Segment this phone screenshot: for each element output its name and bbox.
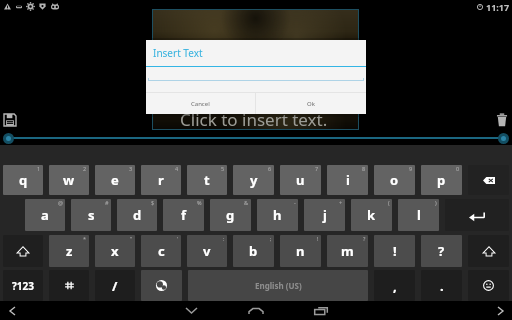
button[interactable]: e [95, 165, 135, 195]
staticText: r [158, 171, 164, 189]
button[interactable]: a [25, 199, 65, 231]
staticText: u [296, 171, 305, 189]
button[interactable]: h [257, 199, 298, 231]
button[interactable]: English (US) [188, 270, 368, 301]
staticText: ' [177, 235, 179, 242]
staticText: % [197, 199, 202, 206]
staticText: ! [317, 235, 319, 242]
staticText: Insert Text [153, 46, 203, 60]
staticText: ; [270, 235, 272, 242]
staticText: t [204, 171, 210, 189]
staticText: ? [438, 242, 445, 260]
button[interactable]: Change language [49, 270, 89, 301]
button[interactable]: Save [3, 113, 17, 127]
staticText: j [323, 206, 327, 224]
staticText: a [41, 206, 49, 224]
staticText: * [83, 235, 87, 242]
staticText: ?123 [12, 279, 34, 293]
staticText: ) [435, 199, 437, 206]
staticText: . [440, 277, 444, 295]
button[interactable]: Delete [495, 113, 509, 127]
staticText: , [393, 277, 397, 295]
staticText: y [250, 171, 258, 189]
button[interactable]: q [3, 165, 43, 195]
button[interactable]: r [141, 165, 181, 195]
button[interactable]: Back [0, 301, 24, 320]
staticText: ? [363, 235, 366, 242]
staticText: l [417, 206, 421, 224]
button[interactable]: g [210, 199, 251, 231]
staticText: b [249, 242, 258, 260]
button[interactable]: Shift [468, 235, 509, 267]
staticText: 9 [409, 165, 413, 172]
button[interactable]: / [95, 270, 135, 301]
button[interactable]: ? [421, 235, 462, 267]
button[interactable]: Emoji [468, 270, 509, 301]
button[interactable]: b [233, 235, 274, 267]
staticText: d [133, 206, 142, 224]
button[interactable]: . [421, 270, 462, 301]
button[interactable]: Click to insert text. [153, 10, 358, 129]
button[interactable]: , [374, 270, 415, 301]
button[interactable]: w [49, 165, 89, 195]
staticText: v [203, 242, 211, 260]
button[interactable]: Enter [445, 199, 509, 231]
staticText: 11:17 [486, 1, 510, 13]
staticText: o [390, 171, 399, 189]
staticText: & [244, 199, 249, 206]
staticText: Click to insert text. [180, 108, 328, 131]
button[interactable]: v [187, 235, 227, 267]
button[interactable]: c [141, 235, 181, 267]
button[interactable]: s [71, 199, 111, 231]
button[interactable]: j [304, 199, 345, 231]
staticText: e [111, 171, 119, 189]
button[interactable]: Language [141, 270, 182, 301]
button[interactable]: k [351, 199, 392, 231]
staticText: 5 [221, 165, 225, 172]
staticText: / [112, 277, 118, 295]
button[interactable]: Backspace [468, 165, 509, 195]
button[interactable]: i [327, 165, 368, 195]
staticText: " [130, 235, 133, 242]
button[interactable]: u [280, 165, 321, 195]
button[interactable]: f [163, 199, 204, 231]
staticText: 3 [129, 165, 133, 172]
staticText: q [19, 171, 28, 189]
button[interactable] [0, 131, 512, 145]
staticText: 8 [362, 165, 366, 172]
button[interactable]: Recents [307, 301, 335, 320]
button[interactable]: Forward [488, 301, 512, 320]
staticText: k [367, 206, 376, 224]
staticText: English (US) [255, 280, 302, 291]
button[interactable]: z [49, 235, 89, 267]
staticText: f [181, 206, 187, 224]
button[interactable]: ?123 [3, 270, 43, 301]
button[interactable]: Cancel [146, 93, 255, 114]
button[interactable]: l [398, 199, 439, 231]
button[interactable]: y [233, 165, 274, 195]
button[interactable]: ! [374, 235, 415, 267]
button[interactable]: o [374, 165, 415, 195]
staticText: Ok [307, 100, 315, 108]
button[interactable]: Ok [256, 93, 366, 114]
button[interactable]: n [280, 235, 321, 267]
button[interactable]: x [95, 235, 135, 267]
button[interactable]: Hide keyboard [177, 301, 205, 320]
staticText: : [223, 235, 225, 242]
staticText: c [158, 242, 165, 260]
staticText: h [273, 206, 282, 224]
button[interactable]: t [187, 165, 227, 195]
button[interactable] [146, 67, 366, 92]
staticText: 0 [456, 165, 460, 172]
staticText: ( [388, 199, 390, 206]
staticText: n [296, 242, 305, 260]
staticText: ! [393, 242, 397, 260]
button[interactable]: p [421, 165, 462, 195]
button[interactable]: Shift [3, 235, 43, 267]
staticText: w [63, 171, 75, 189]
button[interactable]: Home [242, 301, 270, 320]
staticText: z [66, 242, 73, 260]
button[interactable]: d [117, 199, 157, 231]
staticText: m [341, 242, 354, 260]
button[interactable]: m [327, 235, 368, 267]
